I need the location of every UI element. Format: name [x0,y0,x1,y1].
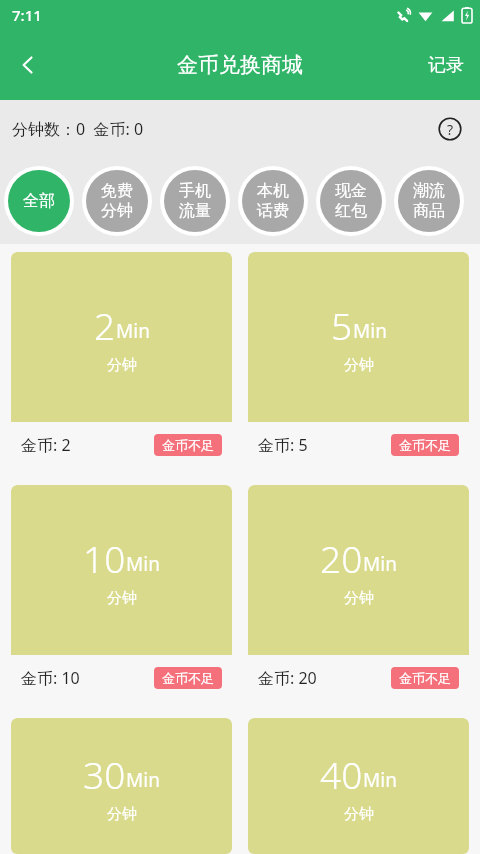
staticText: 30 [83,749,126,799]
button[interactable]: 5 [248,252,469,467]
staticText: Min [126,551,160,577]
staticText: 金币: 2 [21,434,71,456]
staticText: 潮流 [413,181,445,201]
button[interactable]: 记录 [412,42,480,89]
staticText: Min [363,551,397,577]
button[interactable]: 金币不足 [154,667,222,689]
button[interactable]: 手机 [164,170,226,232]
staticText: 2 [94,300,116,350]
staticText: 7:11 [12,5,42,25]
staticText: 金币不足 [162,670,214,686]
staticText: 话费 [257,201,289,221]
button[interactable]: 2 [11,252,232,467]
staticText: 金币: 5 [258,434,308,456]
button[interactable]: 金币不足 [154,434,222,456]
staticText: 免费 [101,181,133,201]
staticText: 40 [320,749,363,799]
button[interactable]: 40 [248,718,469,854]
staticText: 分钟数：0 金币: 0 [12,118,144,140]
button[interactable]: Help [436,115,464,143]
staticText: 金币: 10 [21,667,80,689]
button[interactable]: 30 [11,718,232,854]
button[interactable]: 20 [248,485,469,700]
staticText: 本机 [257,181,289,201]
staticText: 手机 [179,181,211,201]
button[interactable]: 现金 [320,170,382,232]
staticText: 分钟 [344,589,374,608]
staticText: ? [447,120,454,139]
staticText: 红包 [335,201,367,221]
staticText: 分钟 [344,356,374,375]
staticText: Min [353,318,387,344]
staticText: 10 [83,533,126,583]
button[interactable]: 全部 [8,170,70,232]
button[interactable]: 金币不足 [391,667,459,689]
staticText: 金币不足 [162,437,214,453]
button[interactable]: 潮流 [398,170,460,232]
staticText: Min [363,767,397,793]
button[interactable]: 金币不足 [391,434,459,456]
staticText: 金币不足 [399,670,451,686]
staticText: Min [126,767,160,793]
staticText: 分钟 [107,805,137,824]
staticText: 20 [320,533,363,583]
staticText: Min [116,318,150,344]
staticText: 金币: 20 [258,667,317,689]
staticText: 分钟 [344,805,374,824]
staticText: 全部 [23,191,55,211]
staticText: 分钟 [107,356,137,375]
staticText: 记录 [428,54,464,77]
button[interactable]: 免费 [86,170,148,232]
button[interactable]: Back [0,37,56,93]
staticText: 流量 [179,201,211,221]
staticText: 商品 [413,201,445,221]
button[interactable]: 10 [11,485,232,700]
button[interactable]: 本机 [242,170,304,232]
staticText: 金币兑换商城 [177,52,303,78]
staticText: 5 [331,300,353,350]
staticText: 金币不足 [399,437,451,453]
staticText: 现金 [335,181,367,201]
staticText: 分钟 [107,589,137,608]
staticText: 分钟 [101,201,133,221]
